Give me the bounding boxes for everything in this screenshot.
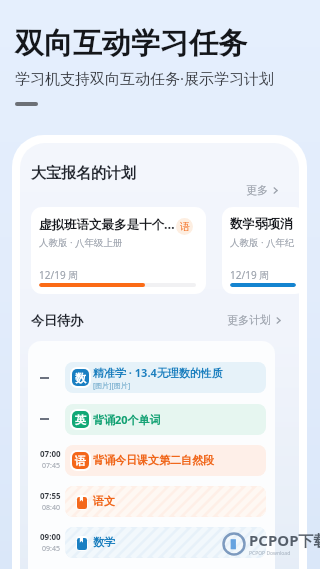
staticText: 12/19 周 xyxy=(230,268,270,282)
staticText: 更多 xyxy=(246,183,268,197)
staticText: [图片][图片] xyxy=(93,381,131,391)
staticText: 虚拟班语文最多是十个… xyxy=(39,216,206,233)
button[interactable]: 更多计划 xyxy=(225,312,284,328)
staticText: 背诵今日课文第二自然段 xyxy=(93,453,214,467)
staticText: PCPOP Download xyxy=(249,550,291,557)
staticText: 数学弱项消 xyxy=(230,216,299,232)
button[interactable]: 虚拟班语文最多是十个… xyxy=(31,207,206,294)
button[interactable]: 数学 xyxy=(65,527,266,558)
staticText: 语 xyxy=(75,454,86,468)
staticText: 07:55 xyxy=(40,490,61,501)
staticText: 背诵20个单词 xyxy=(93,412,161,427)
staticText: 语文 xyxy=(93,494,115,508)
button[interactable]: 语文 xyxy=(65,486,266,517)
staticText: PCPOP下载 xyxy=(249,530,320,550)
staticText: 双向互动学习任务 xyxy=(15,25,247,62)
button[interactable]: 英 xyxy=(65,404,266,435)
staticText: 学习机支持双向互动任务·展示学习计划 xyxy=(15,68,275,88)
button[interactable]: 更多 xyxy=(244,181,281,199)
staticText: 12/19 周 xyxy=(39,268,79,282)
staticText: 人教版 · 八年级上册 xyxy=(39,236,206,249)
staticText: 数学 xyxy=(93,535,115,549)
button[interactable]: 数学弱项消 xyxy=(222,207,299,294)
staticText: 07:00 xyxy=(40,448,61,459)
staticText: 人教版 · 八年纪 xyxy=(230,236,299,249)
staticText: 语 xyxy=(180,220,190,233)
staticText: 数 xyxy=(75,371,86,385)
staticText: 08:40 xyxy=(42,503,60,513)
staticText: 英 xyxy=(75,413,86,427)
staticText: 07:45 xyxy=(42,461,60,471)
staticText: 更多计划 xyxy=(227,313,271,327)
button[interactable]: 语 xyxy=(65,445,266,476)
staticText: 09:45 xyxy=(42,544,60,554)
staticText: 大宝报名的计划 xyxy=(31,164,136,183)
staticText: 09:00 xyxy=(40,531,61,542)
button[interactable]: 数 xyxy=(65,362,266,393)
staticText: 今日待办 xyxy=(31,312,83,328)
staticText: 精准学 · 13.4无理数的性质 xyxy=(93,365,223,380)
